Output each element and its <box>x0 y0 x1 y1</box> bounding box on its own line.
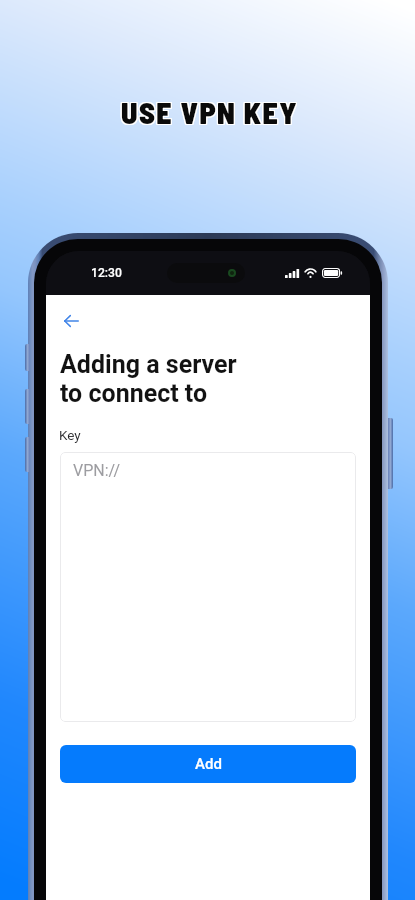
button[interactable]: Add <box>60 745 356 783</box>
staticText: Add <box>195 755 222 773</box>
staticText: Adding a server to connect to <box>60 350 237 408</box>
staticText: USE VPN KEY <box>121 94 299 130</box>
staticText: USE VPN KEY <box>122 94 300 130</box>
staticText: VPN:// <box>73 461 121 480</box>
button[interactable]: VPN:// <box>60 452 356 722</box>
staticText: USE VPN KEY <box>121 93 299 129</box>
staticText: USE VPN KEY <box>120 93 298 129</box>
staticText: 12:30 <box>91 266 122 280</box>
staticText: USE VPN KEY <box>120 94 298 130</box>
staticText: USE VPN KEY <box>121 95 299 131</box>
staticText: USE VPN KEY <box>122 93 300 129</box>
staticText: USE VPN KEY <box>122 95 300 131</box>
staticText: Key <box>59 427 81 443</box>
button[interactable]: Back <box>53 303 89 339</box>
staticText: USE VPN KEY <box>120 95 298 131</box>
